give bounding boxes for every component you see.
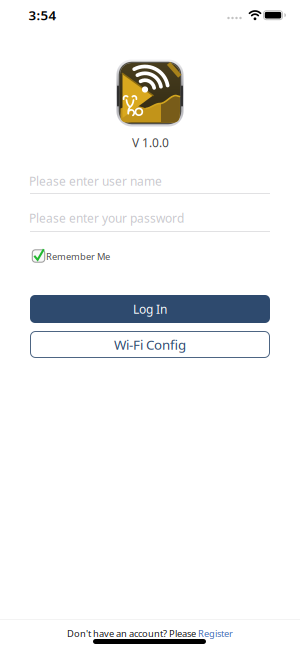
staticText: Register	[198, 627, 233, 640]
staticText: Wi-Fi Config	[114, 336, 186, 353]
staticText: Please enter user name	[29, 173, 162, 189]
staticText: Log In	[133, 301, 167, 317]
staticText: Don't have an account? Please	[67, 627, 198, 640]
staticText: 3:54	[28, 6, 56, 24]
staticText: V 1.0.0	[132, 134, 169, 150]
staticText: Please enter your password	[29, 210, 184, 226]
staticText: Remember Me	[46, 250, 110, 263]
